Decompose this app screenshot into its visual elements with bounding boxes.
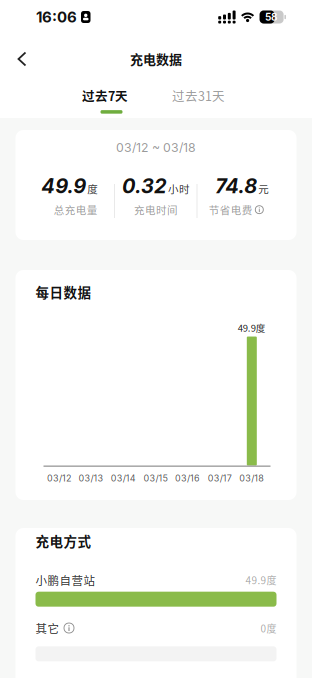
staticText: 03/17 — [208, 473, 232, 484]
button[interactable]: 过去31天 — [172, 86, 225, 105]
button[interactable]: 过去7天 — [82, 86, 128, 114]
staticText: 03/12 — [47, 473, 71, 484]
staticText: 03/12 ~ 03/18 — [116, 140, 196, 155]
staticText: 16:06 — [36, 8, 77, 26]
staticText: 0度 — [260, 621, 276, 635]
button[interactable]: 其它 — [35, 620, 74, 636]
staticText: 小时 — [168, 181, 190, 196]
staticText: 总充电量 — [54, 202, 98, 217]
staticText: 03/18 — [239, 473, 264, 484]
staticText: 每日数据 — [35, 282, 91, 301]
staticText: 03/16 — [175, 473, 200, 484]
staticText: 74.8 — [215, 174, 257, 198]
staticText: 过去31天 — [172, 86, 225, 105]
button[interactable]: Back — [0, 41, 27, 72]
staticText: 元 — [258, 181, 269, 196]
staticText: 度 — [87, 181, 98, 196]
staticText: 充电时间 — [134, 202, 178, 217]
staticText: 49.9 — [41, 174, 86, 198]
staticText: 节省电费 — [209, 202, 253, 217]
staticText: 03/13 — [79, 473, 104, 484]
staticText: 0.32 — [122, 174, 167, 198]
staticText: 其它 — [35, 620, 59, 636]
staticText: 03/14 — [111, 473, 136, 484]
staticText: 过去7天 — [82, 86, 128, 105]
button[interactable]: 节省电费 — [209, 202, 264, 217]
staticText: 03/15 — [143, 473, 167, 484]
staticText: 充电数据 — [130, 49, 182, 68]
staticText: 49.9度 — [238, 321, 266, 335]
staticText: 58 — [265, 11, 278, 23]
staticText: 49.9度 — [245, 573, 276, 587]
staticText: 充电方式 — [35, 531, 91, 550]
staticText: 小鹏自营站 — [35, 571, 95, 588]
